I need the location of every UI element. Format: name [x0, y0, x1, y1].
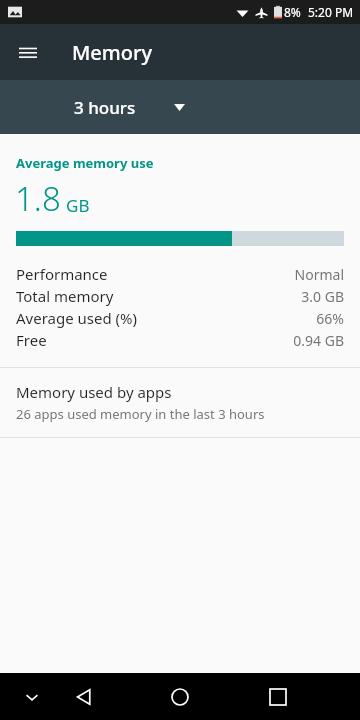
button[interactable]: Home [156, 673, 204, 720]
staticText: Memory [72, 39, 153, 66]
staticText: GB [66, 194, 90, 217]
button[interactable]: Back [60, 673, 108, 720]
staticText: Performance [16, 264, 108, 284]
staticText: Normal [294, 265, 344, 284]
staticText: Total memory [16, 286, 114, 306]
staticText: 0.94 GB [293, 331, 344, 350]
staticText: 3.0 GB [301, 287, 344, 306]
staticText: 3 hours [74, 96, 136, 119]
staticText: Memory used by apps [16, 382, 172, 402]
button[interactable]: Memory used by apps [0, 368, 360, 437]
staticText: 8% [284, 4, 301, 20]
staticText: Free [16, 330, 47, 350]
button[interactable]: 3 hours [70, 88, 189, 127]
staticText: Average memory use [16, 154, 154, 172]
staticText: 5:20 PM [308, 4, 354, 20]
button[interactable]: Open navigation drawer [4, 28, 52, 76]
button[interactable]: Hide keyboard [10, 675, 54, 719]
staticText: 66% [316, 309, 344, 328]
staticText: 26 apps used memory in the last 3 hours [16, 405, 265, 423]
staticText: Average used (%) [16, 308, 138, 328]
staticText: 1.8 [15, 176, 61, 221]
button[interactable]: Recent apps [254, 673, 302, 720]
